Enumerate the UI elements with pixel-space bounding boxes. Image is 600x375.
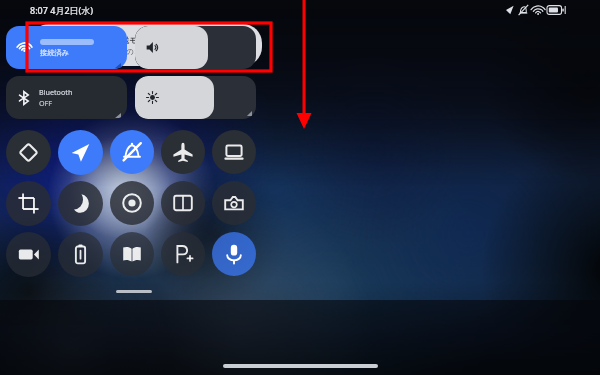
button[interactable]: Home [223, 364, 378, 368]
staticText: 接続済み [40, 48, 69, 57]
button[interactable]: Screenshot [6, 181, 51, 226]
button[interactable]: Location [58, 130, 103, 175]
button[interactable]: Airplane mode [161, 130, 205, 174]
button[interactable]: Focus mode [110, 181, 154, 225]
button[interactable]: Collapse panel [116, 290, 152, 293]
button[interactable]: Do not disturb [58, 181, 103, 226]
staticText: タップしてその他のオプションを表示します。 [66, 47, 225, 56]
button[interactable]: Reading mode [110, 232, 154, 276]
staticText: OFF [39, 98, 53, 108]
button[interactable]: 管理 [42, 76, 83, 97]
staticText: 管理 [55, 82, 70, 91]
button[interactable]: Microphone [212, 232, 256, 276]
button[interactable]: USB ファイル転送モード ON [30, 24, 262, 66]
button[interactable]: Nearby share [161, 232, 205, 276]
button[interactable]: Auto rotate [6, 130, 51, 175]
button[interactable]: Mute notifications [110, 130, 154, 174]
button[interactable]: Cast screen [212, 130, 256, 174]
button[interactable]: Camera access [212, 181, 256, 225]
button[interactable]: Screen record [6, 232, 51, 277]
button[interactable]: Bluetooth [6, 76, 127, 119]
staticText: Bluetooth [39, 87, 73, 97]
button[interactable]: Volume [135, 26, 256, 69]
button[interactable]: 接続済み [6, 26, 127, 69]
button[interactable]: Split screen [161, 181, 205, 225]
button[interactable]: Battery saver [58, 232, 103, 277]
staticText: USB ファイル転送モード ON [66, 35, 167, 45]
button[interactable]: Brightness [135, 76, 256, 119]
staticText: 8:07 4月2日(水) [30, 4, 94, 16]
